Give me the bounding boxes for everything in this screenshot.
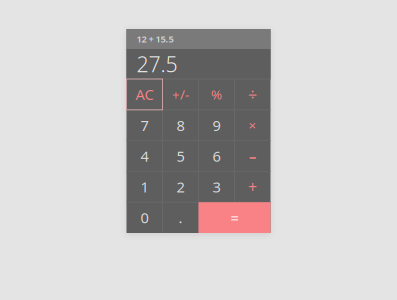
staticText: 6	[212, 146, 220, 166]
staticText: ÷	[248, 84, 257, 105]
button[interactable]: 2	[162, 171, 198, 202]
button[interactable]: +	[234, 171, 270, 202]
button[interactable]: 5	[162, 141, 198, 171]
button[interactable]: –	[234, 141, 270, 171]
staticText: 2	[176, 177, 184, 197]
staticText: .	[178, 208, 182, 227]
button[interactable]: 8	[162, 110, 198, 141]
button[interactable]: ÷	[234, 79, 270, 110]
button[interactable]: .	[162, 202, 198, 233]
staticText: %	[211, 85, 222, 103]
button[interactable]: 1	[126, 171, 162, 202]
button[interactable]: 6	[198, 141, 234, 171]
button[interactable]: +/-	[162, 79, 198, 110]
staticText: ×	[248, 116, 256, 134]
button[interactable]: 0	[126, 202, 162, 233]
button[interactable]: =	[198, 202, 270, 233]
staticText: 9	[212, 115, 220, 135]
button[interactable]: %	[198, 79, 234, 110]
staticText: 1	[140, 177, 148, 197]
staticText: AC	[135, 85, 153, 104]
staticText: 12 + 15.5	[136, 33, 173, 45]
button[interactable]: AC	[126, 79, 162, 110]
button[interactable]: ×	[234, 110, 270, 141]
staticText: 5	[176, 146, 184, 166]
button[interactable]: 9	[198, 110, 234, 141]
staticText: 27.5	[136, 50, 177, 78]
staticText: =	[230, 208, 238, 227]
staticText: +/-	[172, 85, 189, 103]
staticText: –	[249, 146, 256, 166]
staticText: 8	[176, 115, 184, 135]
staticText: 7	[140, 115, 148, 135]
staticText: +	[248, 176, 257, 197]
button[interactable]: 4	[126, 141, 162, 171]
button[interactable]: 3	[198, 171, 234, 202]
button[interactable]: 7	[126, 110, 162, 141]
staticText: 4	[140, 146, 148, 166]
staticText: 0	[140, 208, 148, 227]
staticText: 3	[212, 177, 220, 197]
